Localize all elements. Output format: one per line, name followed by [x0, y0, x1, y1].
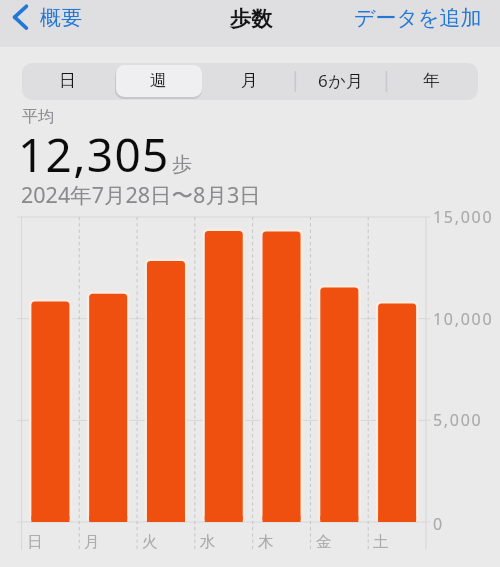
staticText: 平均	[22, 107, 54, 127]
staticText: 歩	[172, 152, 192, 177]
button[interactable]: データを追加	[354, 5, 482, 31]
button[interactable]: 年	[386, 63, 477, 100]
staticText: 月	[241, 70, 259, 91]
staticText: 10,000	[433, 308, 494, 330]
staticText: 概要	[40, 5, 82, 31]
staticText: データを追加	[354, 5, 482, 31]
staticText: 5,000	[433, 409, 483, 431]
staticText: 木	[258, 532, 274, 552]
staticText: 月	[84, 532, 100, 552]
staticText: 12,305	[18, 123, 170, 186]
button[interactable]: 週	[113, 63, 204, 100]
button[interactable]: 6か月	[295, 63, 386, 100]
staticText: 日	[27, 532, 43, 552]
staticText: 6か月	[318, 69, 364, 92]
staticText: 年	[423, 70, 441, 91]
staticText: 火	[142, 532, 158, 552]
staticText: 水	[200, 532, 216, 552]
staticText: 週	[150, 70, 168, 91]
button[interactable]: 日	[22, 63, 113, 100]
staticText: 15,000	[433, 206, 494, 228]
staticText: 金	[316, 532, 332, 552]
staticText: 歩数	[230, 6, 272, 32]
staticText: 2024年7月28日〜8月3日	[21, 180, 261, 209]
staticText: 土	[373, 532, 389, 552]
button[interactable]: 月	[204, 63, 295, 100]
staticText: 0	[433, 513, 444, 535]
button[interactable]: 概要	[8, 0, 82, 36]
staticText: 日	[59, 70, 77, 91]
